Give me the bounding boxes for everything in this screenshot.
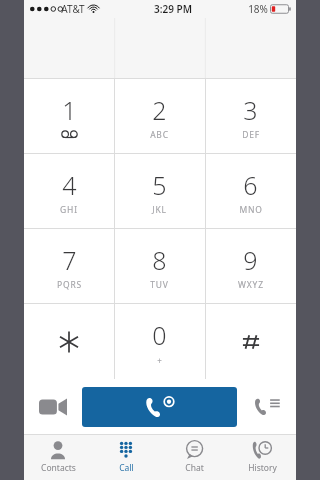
staticText: History — [248, 462, 277, 474]
button[interactable] — [24, 304, 114, 379]
staticText: Contacts — [41, 462, 76, 474]
staticText: TUV — [150, 279, 169, 291]
button[interactable]: History — [228, 434, 296, 480]
staticText: 8 — [152, 243, 167, 277]
button[interactable]: 7 — [24, 229, 114, 304]
staticText: AT&T — [61, 2, 85, 16]
staticText: 0 — [152, 318, 167, 352]
staticText: 6 — [243, 168, 258, 202]
button[interactable]: Call — [92, 434, 160, 480]
button[interactable]: 8 — [114, 229, 205, 304]
button[interactable]: 5 — [114, 154, 205, 229]
button[interactable]: Contacts — [24, 434, 92, 480]
staticText: 7 — [62, 243, 77, 277]
button[interactable]: 0 — [114, 304, 205, 379]
button[interactable]: Call options — [237, 379, 296, 434]
staticText: 2 — [152, 93, 167, 127]
button[interactable]: 2 — [114, 79, 205, 154]
staticText: 9 — [243, 243, 258, 277]
staticText: 18% — [248, 2, 268, 16]
staticText: PQRS — [57, 279, 82, 291]
staticText: JKL — [152, 204, 167, 216]
button[interactable]: 9 — [205, 229, 296, 304]
staticText: 4 — [62, 168, 77, 202]
staticText: MNO — [239, 204, 263, 216]
button[interactable]: 3 — [205, 79, 296, 154]
staticText: ABC — [150, 129, 169, 141]
staticText: 3 — [243, 93, 258, 127]
button[interactable]: Chat — [160, 434, 228, 480]
staticText: 3:29 PM — [154, 2, 192, 16]
button[interactable]: 4 — [24, 154, 114, 229]
button[interactable]: 6 — [205, 154, 296, 229]
button[interactable]: Call — [82, 387, 237, 427]
button[interactable] — [205, 304, 296, 379]
staticText: Call — [119, 462, 134, 474]
button[interactable]: Video call — [24, 379, 82, 434]
staticText: + — [157, 355, 162, 366]
staticText: WXYZ — [238, 279, 264, 291]
staticText: GHI — [60, 204, 78, 216]
staticText: 5 — [152, 168, 167, 202]
staticText: Chat — [185, 462, 204, 474]
button[interactable]: 1 — [24, 79, 114, 154]
staticText: DEF — [242, 129, 260, 141]
staticText: 1 — [62, 93, 77, 127]
